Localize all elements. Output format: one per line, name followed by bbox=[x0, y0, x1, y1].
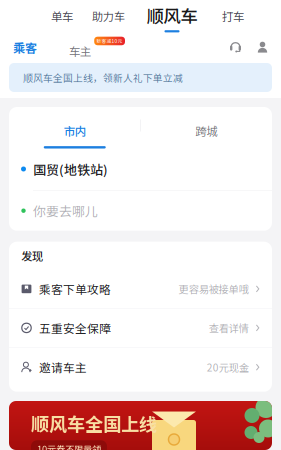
button[interactable]: 助力车 bbox=[84, 0, 133, 32]
button[interactable]: 顺风车 bbox=[133, 0, 211, 33]
staticText: 单车 bbox=[51, 8, 73, 24]
button[interactable]: 邀请车主 bbox=[9, 348, 272, 387]
button[interactable]: 我的 bbox=[257, 42, 268, 53]
button[interactable]: 客服 bbox=[230, 42, 241, 53]
staticText: 顺风车全国上线，领新人礼下单立减 bbox=[23, 70, 183, 85]
button[interactable]: 打车 bbox=[211, 0, 255, 32]
button[interactable]: 国贸(地铁站) bbox=[9, 148, 272, 190]
staticText: 新客减10元 bbox=[97, 37, 123, 44]
staticText: 五重安全保障 bbox=[39, 319, 111, 336]
staticText: 打车 bbox=[222, 8, 244, 24]
staticText: 顺风车 bbox=[146, 3, 197, 28]
staticText: 乘客 bbox=[13, 39, 37, 56]
button[interactable]: 车主 bbox=[69, 32, 105, 63]
button[interactable]: 乘客 bbox=[11, 32, 39, 63]
staticText: 邀请车主 bbox=[39, 359, 87, 376]
staticText: 查看详情 bbox=[209, 321, 249, 335]
staticText: 你要去哪儿 bbox=[33, 201, 98, 220]
button[interactable]: 五重安全保障 bbox=[9, 309, 272, 348]
staticText: 车主 bbox=[69, 43, 91, 59]
staticText: 20元现金 bbox=[207, 360, 249, 375]
staticText: 10元券不限量领 bbox=[37, 442, 101, 450]
staticText: 乘客下单攻略 bbox=[39, 280, 111, 297]
staticText: 助力车 bbox=[92, 8, 125, 24]
button[interactable]: 顺风车全国上线 bbox=[0, 401, 281, 450]
staticText: 发现 bbox=[21, 248, 43, 264]
button[interactable]: 单车 bbox=[40, 0, 84, 32]
button[interactable]: 你要去哪儿 bbox=[9, 191, 272, 231]
staticText: 国贸(地铁站) bbox=[33, 160, 108, 178]
staticText: 跨城 bbox=[195, 122, 217, 139]
staticText: 顺风车全国上线 bbox=[31, 410, 157, 436]
button[interactable]: 市内 bbox=[9, 106, 140, 148]
button[interactable]: 跨城 bbox=[140, 106, 272, 148]
staticText: 市内 bbox=[64, 122, 86, 139]
button[interactable]: 乘客下单攻略 bbox=[9, 270, 272, 309]
staticText: 更容易被接单哦 bbox=[179, 282, 249, 296]
